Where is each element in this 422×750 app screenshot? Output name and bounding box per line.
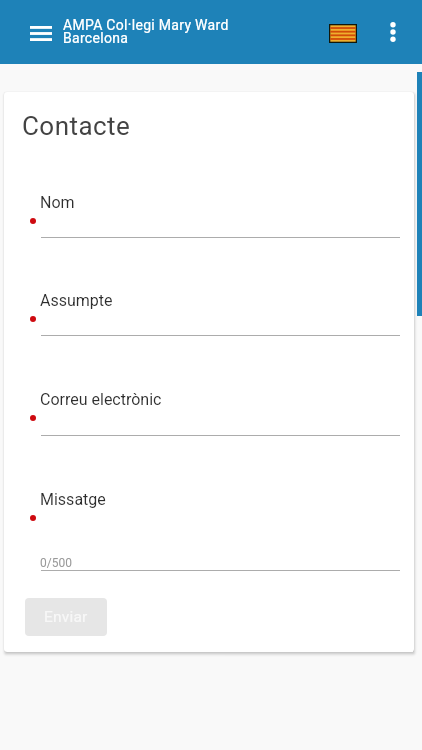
staticText: Barcelona <box>63 29 129 47</box>
button[interactable]: Enviar <box>25 598 107 636</box>
staticText: Enviar <box>44 608 88 626</box>
button[interactable]: Nom <box>26 187 400 245</box>
button[interactable]: More options <box>371 11 415 53</box>
staticText: AMPA Col·legi Mary Ward <box>63 16 229 34</box>
button[interactable]: Change language <box>321 16 365 50</box>
staticText: Correu electrònic <box>40 390 162 409</box>
button[interactable]: Missatge <box>26 484 400 578</box>
staticText: 0/500 <box>40 556 72 570</box>
staticText: Nom <box>40 193 75 212</box>
button[interactable]: Assumpte <box>26 285 400 343</box>
staticText: Missatge <box>40 490 106 509</box>
button[interactable]: Open navigation menu <box>18 21 62 45</box>
staticText: Assumpte <box>40 291 113 310</box>
staticText: Contacte <box>22 110 131 142</box>
button[interactable]: Correu electrònic <box>26 384 400 443</box>
